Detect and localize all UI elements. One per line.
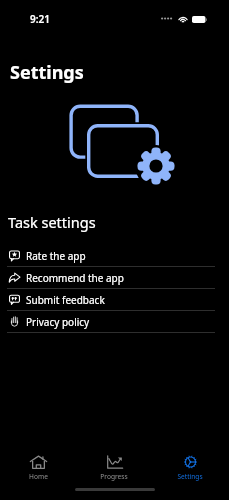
staticText: Settings <box>177 472 203 481</box>
staticText: Submit feedback <box>26 293 105 307</box>
staticText: Recommend the app <box>26 271 124 285</box>
button[interactable]: Recommend the app <box>0 267 229 288</box>
staticText: Settings <box>10 60 84 85</box>
other: Settings <box>182 455 199 469</box>
button[interactable]: Home <box>7 455 69 481</box>
other: Progress <box>106 455 123 469</box>
staticText: Privacy policy <box>26 315 90 329</box>
staticText: 9:21 <box>30 12 50 26</box>
button[interactable]: Privacy policy <box>0 311 229 332</box>
staticText: Progress <box>100 472 128 481</box>
staticText: Home <box>29 472 48 481</box>
other: Home <box>30 455 47 469</box>
staticText: Rate the app <box>26 249 86 263</box>
button[interactable]: Progress <box>83 455 145 481</box>
staticText: Task settings <box>8 212 96 232</box>
button[interactable]: Settings <box>159 455 221 481</box>
button[interactable]: Submit feedback <box>0 289 229 310</box>
button[interactable]: Rate the app <box>0 245 229 266</box>
